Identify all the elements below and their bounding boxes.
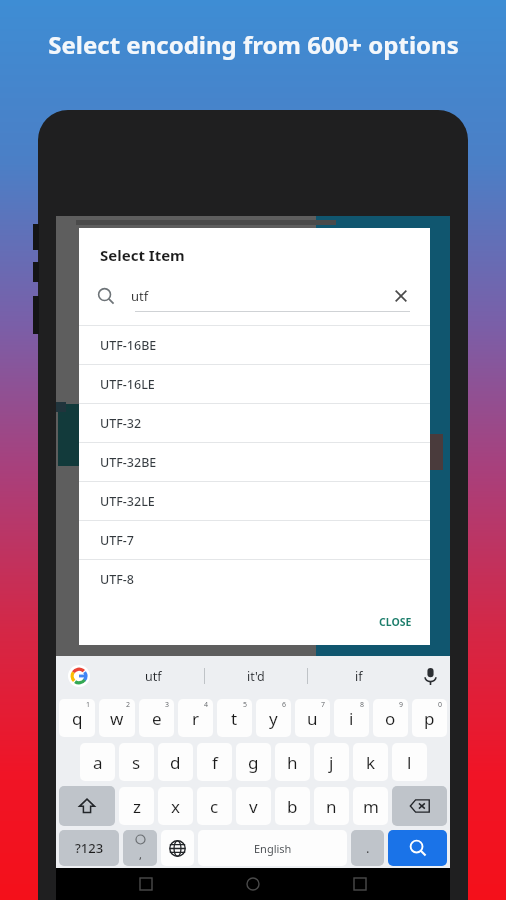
staticText: it'd	[247, 668, 265, 685]
button[interactable]: UTF-7	[79, 521, 430, 559]
button[interactable]: Recent apps	[343, 868, 377, 900]
staticText: 6	[282, 700, 287, 710]
button[interactable]: utf	[102, 656, 204, 696]
button[interactable]: it'd	[205, 656, 307, 696]
staticText: UTF-7	[100, 532, 135, 549]
button[interactable]: x	[158, 787, 193, 825]
button[interactable]: j	[314, 743, 349, 781]
staticText: k	[366, 751, 376, 774]
button[interactable]: b	[275, 787, 310, 825]
staticText: utf	[145, 668, 162, 685]
staticText: English	[254, 841, 292, 856]
staticText: 2	[126, 700, 131, 710]
button[interactable]: p	[412, 699, 447, 737]
staticText: d	[170, 751, 181, 774]
staticText: 9	[399, 700, 404, 710]
button[interactable]: Home	[236, 868, 270, 900]
button[interactable]: ?123	[59, 830, 119, 866]
button[interactable]: v	[236, 787, 271, 825]
staticText: g	[248, 751, 259, 774]
staticText: l	[407, 751, 412, 774]
button[interactable]: w	[99, 699, 135, 737]
button[interactable]: Backspace	[392, 786, 447, 826]
button[interactable]: o	[373, 699, 408, 737]
staticText: b	[287, 795, 298, 818]
staticText: h	[287, 751, 298, 774]
staticText: Select Item	[100, 245, 185, 265]
staticText: utf	[131, 287, 149, 305]
button[interactable]: Emoji and comma	[123, 830, 157, 866]
button[interactable]: n	[314, 787, 349, 825]
button[interactable]: Back	[129, 868, 163, 900]
staticText: 3	[165, 700, 170, 710]
button[interactable]: r	[178, 699, 213, 737]
staticText: UTF-32LE	[100, 493, 155, 510]
staticText: s	[132, 751, 141, 774]
staticText: .	[366, 839, 370, 857]
staticText: a	[93, 751, 103, 774]
button[interactable]: z	[119, 787, 154, 825]
button[interactable]: Search	[388, 830, 447, 866]
button[interactable]: Change language	[161, 830, 194, 866]
staticText: UTF-8	[100, 571, 135, 588]
button[interactable]: d	[158, 743, 193, 781]
staticText: UTF-16BE	[100, 337, 157, 354]
staticText: 1	[86, 700, 91, 710]
staticText: u	[307, 707, 318, 730]
staticText: m	[363, 795, 379, 818]
button[interactable]: i	[334, 699, 369, 737]
button[interactable]: u	[295, 699, 330, 737]
button[interactable]: UTF-32BE	[79, 443, 430, 481]
button[interactable]: h	[275, 743, 310, 781]
button[interactable]: t	[217, 699, 252, 737]
staticText: e	[152, 707, 162, 730]
button[interactable]: m	[353, 787, 388, 825]
button[interactable]: c	[197, 787, 232, 825]
staticText: z	[133, 795, 141, 818]
staticText: 7	[321, 700, 326, 710]
button[interactable]: UTF-16BE	[79, 326, 430, 364]
button[interactable]: y	[256, 699, 291, 737]
button[interactable]: UTF-32LE	[79, 482, 430, 520]
staticText: UTF-16LE	[100, 376, 155, 393]
button[interactable]: Clear search	[390, 285, 412, 307]
button[interactable]: UTF-8	[79, 560, 430, 598]
staticText: c	[210, 795, 219, 818]
button[interactable]: k	[353, 743, 388, 781]
staticText: 4	[204, 700, 209, 710]
staticText: x	[171, 795, 180, 818]
button[interactable]: Voice input	[410, 656, 450, 696]
staticText: 0	[438, 700, 443, 710]
button[interactable]: if	[308, 656, 410, 696]
button[interactable]: a	[80, 743, 115, 781]
staticText: 5	[243, 700, 248, 710]
staticText: r	[192, 707, 200, 730]
button[interactable]: Google	[56, 665, 102, 687]
staticText: o	[385, 707, 396, 730]
staticText: 8	[360, 700, 365, 710]
staticText: n	[326, 795, 337, 818]
button[interactable]: .	[351, 830, 384, 866]
staticText: CLOSE	[379, 615, 412, 629]
button[interactable]: l	[392, 743, 427, 781]
button[interactable]: UTF-32	[79, 404, 430, 442]
staticText: t	[231, 707, 238, 730]
button[interactable]: CLOSE	[361, 607, 430, 637]
button[interactable]: s	[119, 743, 154, 781]
button[interactable]: f	[197, 743, 232, 781]
button[interactable]: e	[139, 699, 174, 737]
staticText: p	[424, 707, 435, 730]
button[interactable]: Shift	[59, 786, 115, 826]
staticText: v	[249, 795, 258, 818]
staticText: Select encoding from 600+ options	[48, 28, 459, 61]
button[interactable]: English	[198, 830, 347, 866]
staticText: w	[110, 707, 124, 730]
button[interactable]: g	[236, 743, 271, 781]
staticText: ?123	[75, 839, 104, 857]
button[interactable]: UTF-16LE	[79, 365, 430, 403]
staticText: q	[72, 707, 83, 730]
staticText: i	[349, 707, 354, 730]
button[interactable]: q	[59, 699, 95, 737]
staticText: f	[212, 751, 218, 774]
staticText: if	[355, 668, 363, 685]
